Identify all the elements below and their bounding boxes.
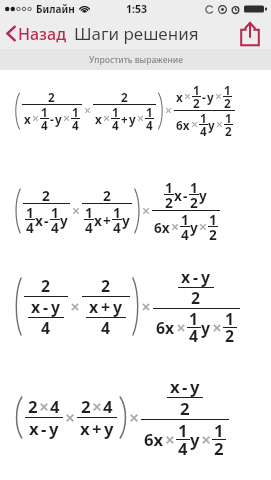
staticText: y [199, 186, 207, 205]
staticText: 1 [190, 178, 198, 197]
staticText: y [55, 111, 62, 127]
staticText: - [44, 211, 49, 230]
staticText: 2 [190, 193, 198, 212]
staticText: 4 [41, 317, 51, 339]
staticText: y [190, 375, 200, 398]
staticText: y [201, 266, 211, 288]
staticText: 2 [28, 395, 38, 418]
staticText: 4 [146, 117, 153, 133]
button[interactable]: Share [232, 20, 271, 48]
staticText: 6x [154, 218, 170, 237]
staticText: 2 [103, 186, 111, 205]
staticText: 2 [191, 287, 201, 309]
staticText: y [49, 417, 59, 440]
staticText: y [113, 296, 123, 318]
staticText: 4 [41, 117, 48, 133]
staticText: 4 [51, 218, 59, 237]
staticText: 1 [209, 210, 217, 229]
staticText: 2 [48, 89, 55, 105]
staticText: 1 [181, 210, 189, 229]
staticText: 1 [41, 104, 48, 120]
staticText: 2 [180, 397, 190, 420]
staticText: y [190, 428, 200, 451]
staticText: + [101, 296, 111, 318]
staticText: 6x [144, 428, 164, 451]
staticText: x [181, 266, 191, 288]
staticText: 2 [41, 275, 51, 297]
button[interactable]: Назад [0, 18, 69, 49]
staticText: - [182, 375, 188, 398]
staticText: 4 [178, 437, 188, 460]
staticText: 2 [224, 95, 231, 111]
staticText: 1 [225, 110, 232, 126]
staticText: x [80, 417, 90, 440]
staticText: 2 [121, 89, 128, 105]
staticText: 2 [209, 225, 217, 244]
staticText: + [92, 417, 102, 440]
staticText: + [103, 211, 111, 230]
staticText: x [176, 89, 183, 105]
staticText: 1 [146, 104, 153, 120]
staticText: 6x [176, 117, 190, 133]
staticText: + [121, 111, 128, 127]
staticText: 4 [85, 218, 93, 237]
staticText: 1 [178, 419, 188, 442]
staticText: 2 [165, 193, 173, 212]
staticText: 1 [85, 203, 93, 222]
staticText: x [170, 375, 180, 398]
staticText: 2 [42, 186, 50, 205]
staticText: - [43, 296, 49, 318]
staticText: 2 [225, 123, 232, 139]
staticText: 4 [181, 225, 189, 244]
staticText: 1 [224, 82, 231, 98]
staticText: Назад [18, 23, 66, 44]
staticText: x [94, 211, 102, 230]
staticText: x [95, 111, 102, 127]
staticText: 2 [81, 395, 91, 418]
staticText: y [51, 296, 61, 318]
staticText: 1:53 [126, 2, 147, 16]
staticText: 6x [156, 317, 175, 339]
staticText: y [104, 417, 114, 440]
staticText: 1 [189, 308, 199, 330]
staticText: y [60, 211, 68, 230]
staticText: 1 [214, 419, 224, 442]
staticText: 1 [112, 104, 119, 120]
staticText: Шаги решения [74, 22, 199, 45]
staticText: y [129, 111, 136, 127]
staticText: - [183, 186, 188, 205]
staticText: 4 [103, 395, 113, 418]
staticText: y [190, 218, 198, 237]
staticText: 1 [165, 178, 173, 197]
staticText: 4 [26, 218, 34, 237]
staticText: 4 [189, 325, 199, 347]
staticText: x [24, 111, 31, 127]
staticText: 1 [51, 203, 59, 222]
staticText: - [50, 111, 54, 127]
staticText: y [122, 211, 130, 230]
staticText: y [201, 317, 211, 339]
staticText: 4 [200, 123, 207, 139]
staticText: - [202, 89, 206, 105]
staticText: 1 [200, 110, 207, 126]
staticText: Билайн [36, 2, 75, 16]
staticText: 1 [113, 203, 121, 222]
staticText: 2 [193, 95, 200, 111]
staticText: y [208, 117, 215, 133]
staticText: 2 [225, 325, 235, 347]
staticText: 1 [193, 82, 200, 98]
staticText: 2 [214, 437, 224, 460]
staticText: - [193, 266, 199, 288]
staticText: x [35, 211, 43, 230]
staticText: 4 [50, 395, 60, 418]
staticText: 4 [72, 117, 79, 133]
staticText: 1 [225, 308, 235, 330]
staticText: 1 [72, 104, 79, 120]
staticText: x [31, 296, 41, 318]
staticText: y [207, 89, 214, 105]
staticText: x [174, 186, 182, 205]
staticText: 2 [101, 275, 111, 297]
staticText: 4 [112, 117, 119, 133]
staticText: x [29, 417, 39, 440]
staticText: x [89, 296, 99, 318]
